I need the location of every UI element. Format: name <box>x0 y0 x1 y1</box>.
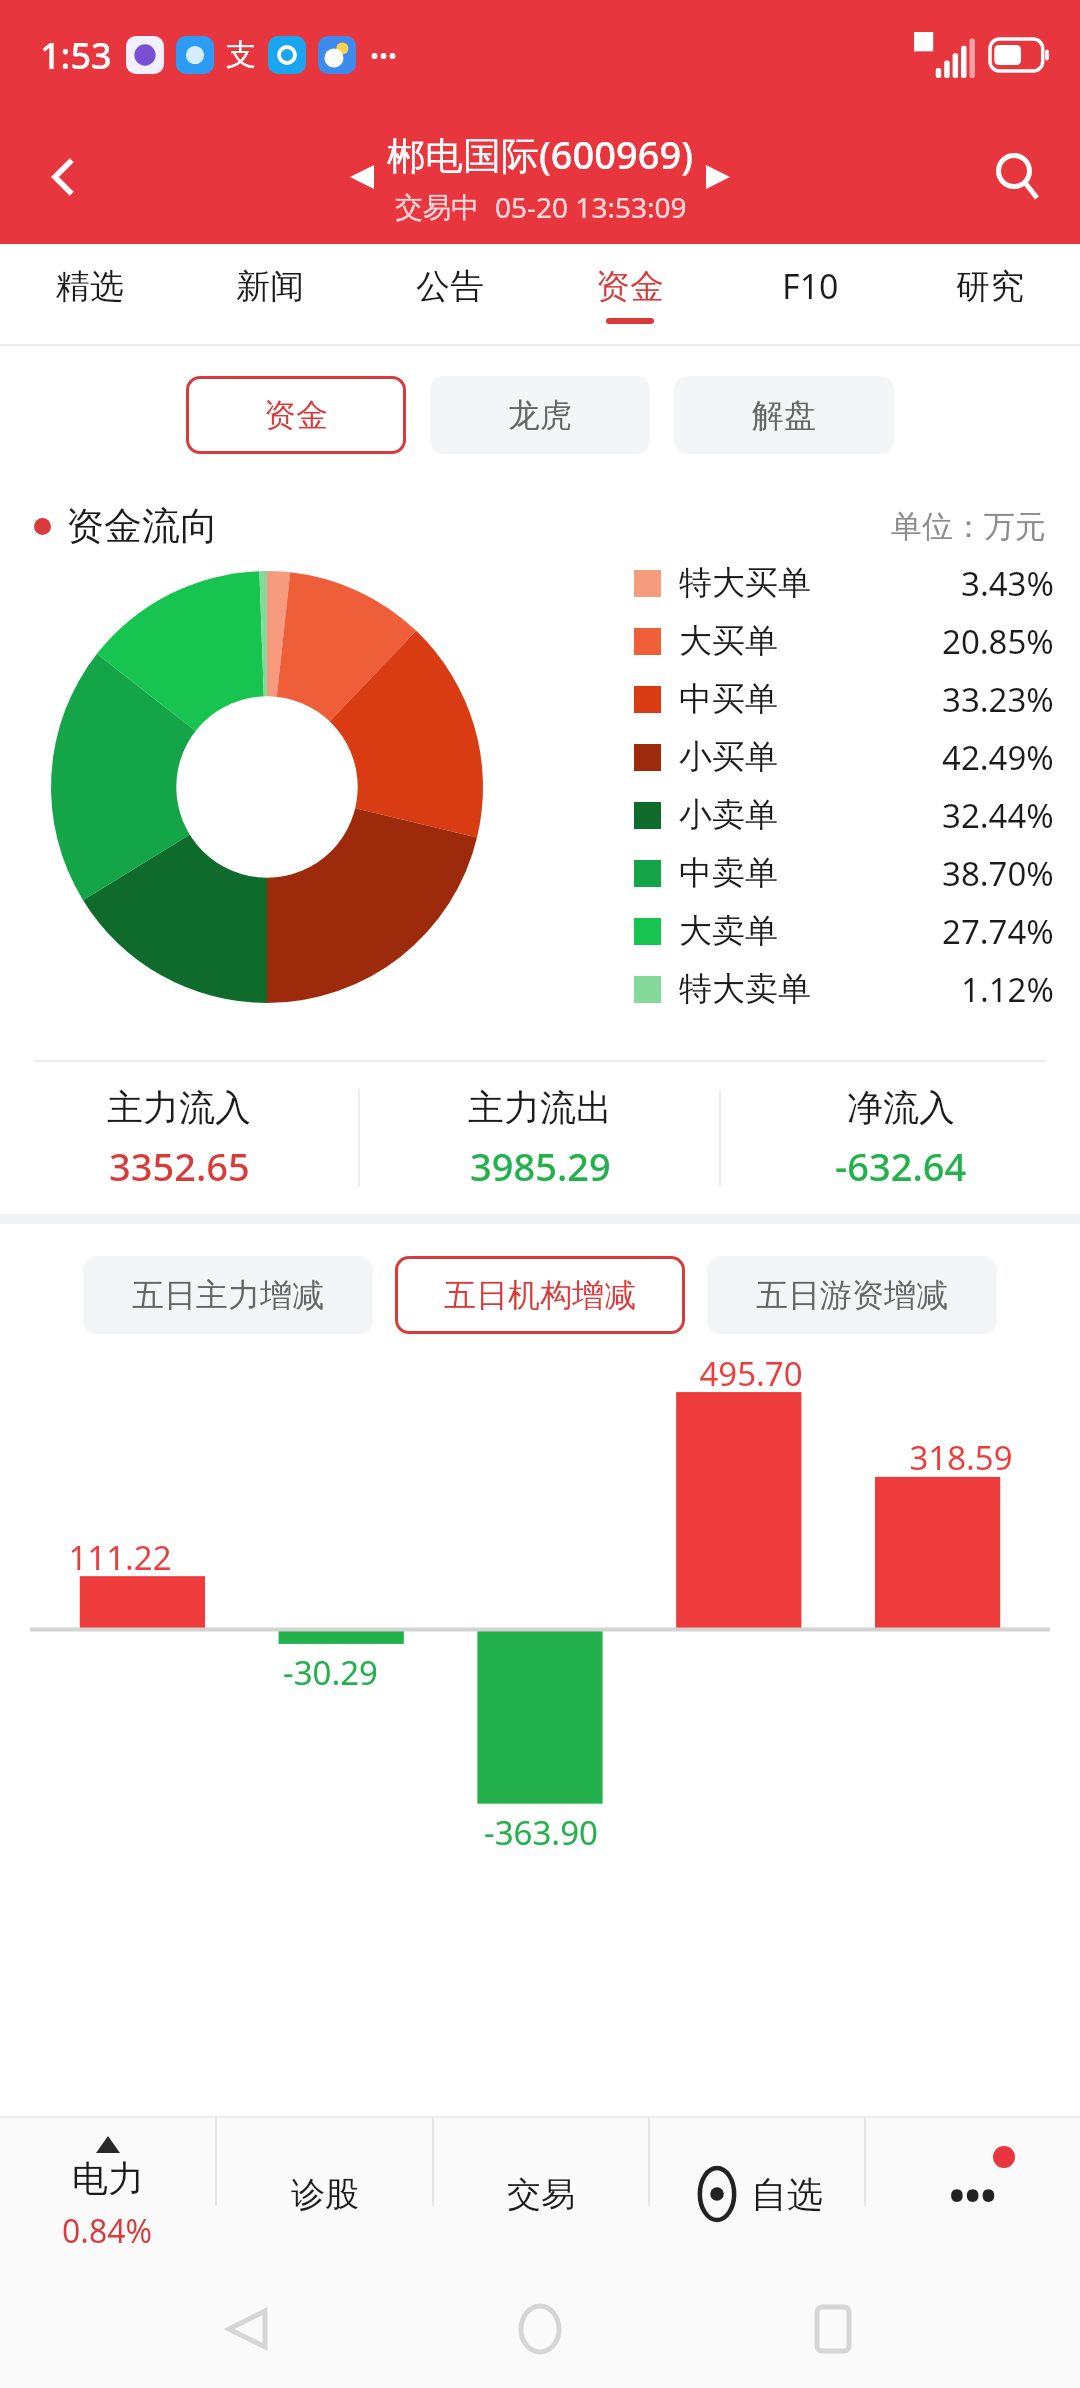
staticText: 主力流入 <box>107 1085 251 1130</box>
button[interactable]: 研究 <box>900 244 1080 344</box>
staticText: 3.43% <box>961 561 1054 606</box>
staticText: 中买单 <box>679 678 778 720</box>
staticText: 中卖单 <box>679 852 778 894</box>
staticText: 495.70 <box>699 1351 803 1396</box>
staticText: 小买单 <box>679 736 778 778</box>
button[interactable]: 交易 <box>434 2118 648 2270</box>
staticText: 公告 <box>416 265 484 308</box>
staticText: 33.23% <box>942 677 1054 722</box>
button[interactable]: 精选 <box>0 244 180 344</box>
staticText: 净流入 <box>847 1085 955 1130</box>
staticText: 1.12% <box>961 967 1054 1012</box>
button[interactable]: Previous stock <box>326 141 398 213</box>
button[interactable]: 五日游资增减 <box>707 1256 997 1334</box>
button[interactable]: 主力流入 <box>0 1062 358 1214</box>
staticText: -30.29 <box>283 1650 378 1695</box>
staticText: 五日游资增减 <box>756 1275 948 1315</box>
button[interactable]: 资金 <box>540 244 720 344</box>
staticText: 资金流向 <box>66 502 218 550</box>
staticText: 研究 <box>956 265 1024 308</box>
staticText: 1:53 <box>40 31 112 80</box>
staticText: F10 <box>782 263 839 309</box>
staticText: 五日主力增减 <box>132 1275 324 1315</box>
staticText: 单位：万元 <box>891 507 1046 546</box>
button[interactable]: 净流入 <box>721 1062 1080 1214</box>
staticText: 大卖单 <box>679 910 778 952</box>
staticText: 资金 <box>264 395 328 435</box>
staticText: 龙虎 <box>508 395 572 435</box>
staticText: 38.70% <box>942 851 1054 896</box>
staticText: 3985.29 <box>470 1140 611 1192</box>
button[interactable]: Back <box>0 110 130 244</box>
button[interactable]: 五日主力增减 <box>83 1256 373 1334</box>
button[interactable]: 公告 <box>360 244 540 344</box>
staticText: 0.84% <box>62 2209 153 2253</box>
staticText: 交易 <box>507 2173 575 2216</box>
button[interactable]: Search <box>956 110 1080 244</box>
staticText: 精选 <box>56 265 124 308</box>
staticText: 郴电国际(600969) <box>387 128 694 180</box>
staticText: 自选 <box>751 2172 823 2217</box>
staticText: 支 <box>226 36 256 74</box>
staticText: 新闻 <box>236 265 304 308</box>
button[interactable]: 龙虎 <box>430 376 650 454</box>
button[interactable]: 解盘 <box>674 376 894 454</box>
staticText: -632.64 <box>835 1140 967 1192</box>
staticText: 主力流出 <box>468 1085 612 1130</box>
staticText: 交易中 <box>395 190 479 225</box>
staticText: 27.74% <box>942 909 1054 954</box>
staticText: ••• <box>370 39 398 72</box>
staticText: 资金 <box>596 265 664 308</box>
button[interactable]: Next stock <box>682 141 754 213</box>
staticText: 3352.65 <box>109 1140 250 1192</box>
staticText: 20.85% <box>942 619 1054 664</box>
staticText: 111.22 <box>68 1535 172 1580</box>
button[interactable]: 电力 <box>0 2118 215 2270</box>
button[interactable]: 资金 <box>186 376 406 454</box>
button[interactable]: 主力流出 <box>360 1062 719 1214</box>
button[interactable]: Back <box>201 2283 293 2375</box>
staticText: 诊股 <box>291 2173 359 2216</box>
staticText: 318.59 <box>909 1435 1013 1480</box>
staticText: 解盘 <box>752 395 816 435</box>
staticText: 特大买单 <box>679 562 811 604</box>
staticText: -363.90 <box>484 1810 598 1855</box>
button[interactable]: 诊股 <box>217 2118 432 2270</box>
staticText: 大买单 <box>679 620 778 662</box>
staticText: 电力 <box>72 2156 144 2201</box>
button[interactable]: 自选 <box>650 2118 864 2270</box>
button[interactable]: More options <box>866 2118 1080 2270</box>
button[interactable]: Recents <box>787 2283 879 2375</box>
button[interactable]: 五日机构增减 <box>395 1256 685 1334</box>
staticText: 特大卖单 <box>679 968 811 1010</box>
button[interactable]: Home <box>494 2283 586 2375</box>
staticText: 小卖单 <box>679 794 778 836</box>
staticText: 42.49% <box>942 735 1054 780</box>
button[interactable]: F10 <box>720 244 900 344</box>
button[interactable]: 新闻 <box>180 244 360 344</box>
staticText: ••• <box>949 2166 997 2223</box>
staticText: 五日机构增减 <box>444 1275 636 1315</box>
staticText: 32.44% <box>942 793 1054 838</box>
staticText: 05-20 13:53:09 <box>495 188 687 226</box>
